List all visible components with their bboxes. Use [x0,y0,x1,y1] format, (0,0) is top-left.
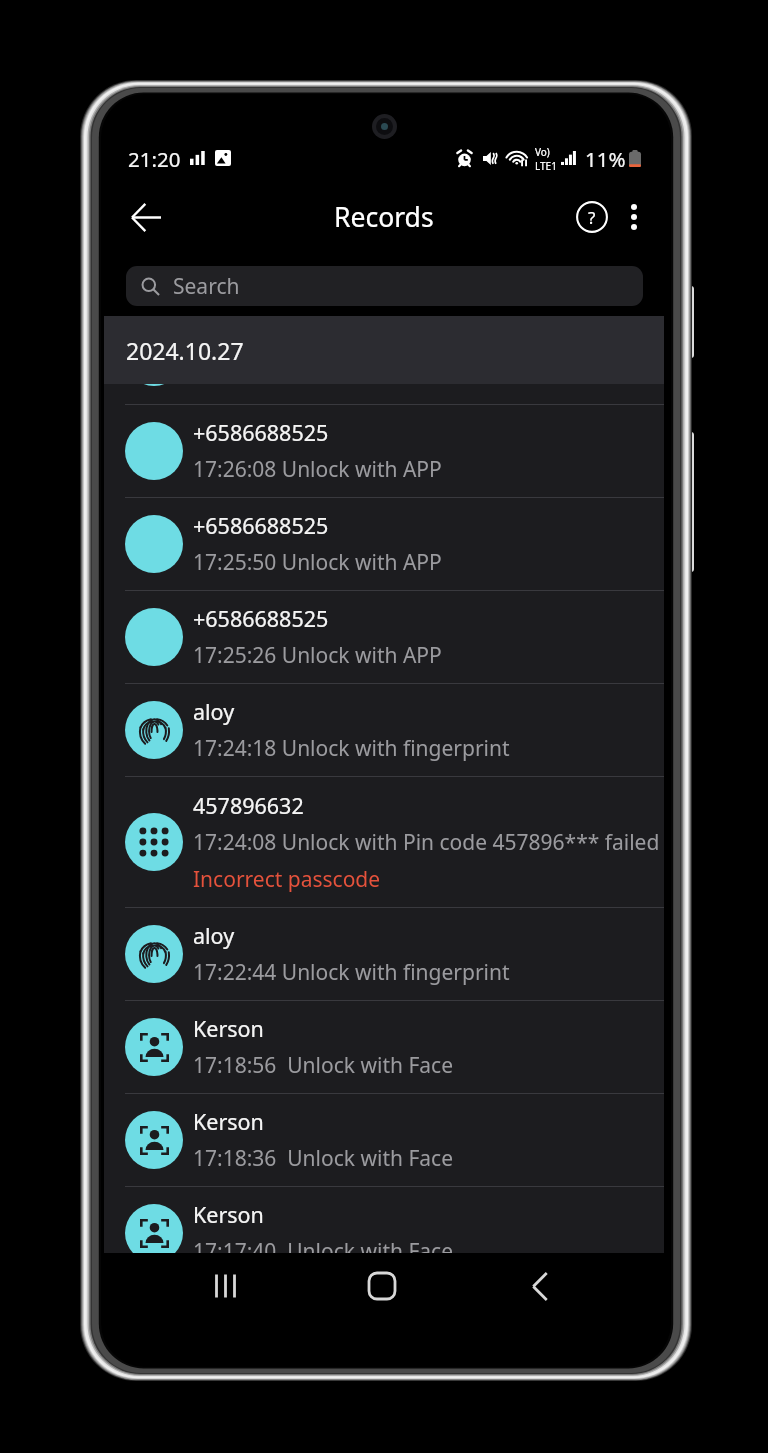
button[interactable]: 2024.10.27 [104,316,664,384]
button[interactable]: Home [353,1257,411,1315]
staticText: 2024.10.27 [126,335,244,366]
staticText: 21:20 [128,145,181,171]
staticText: 457896632 [193,791,304,820]
button[interactable]: Kerson [104,1000,664,1093]
button[interactable]: +6586688525 [104,497,664,590]
staticText: 17:18:56 Unlock with Face [193,1051,453,1080]
staticText: Records [334,199,434,235]
button[interactable]: Kerson [104,1093,664,1186]
staticText: 17:17:40 Unlock with Face [193,1237,453,1253]
staticText: Vo) [535,145,550,159]
staticText: 17:26:08 Unlock with APP [193,455,442,484]
staticText: 17:25:50 Unlock with APP [193,548,442,577]
staticText: 11% [585,145,626,171]
staticText: aloy [193,697,235,726]
staticText: Search [173,272,240,301]
staticText: LTE1 [535,159,557,171]
staticText: Kerson [193,1200,264,1229]
staticText: 17:25:26 Unlock with APP [193,641,442,670]
staticText: 17:18:36 Unlock with Face [193,1144,453,1173]
button[interactable]: More options [612,195,656,239]
button[interactable]: Help [566,191,618,243]
button[interactable]: Recent apps [196,1257,254,1315]
button[interactable]: aloy [104,907,664,1000]
button[interactable]: +6586688525 [104,590,664,683]
staticText: aloy [193,921,235,950]
staticText: ? [588,206,596,229]
button[interactable]: Search [126,266,643,306]
staticText: 17:22:44 Unlock with fingerprint [193,958,510,987]
staticText: +6586688525 [193,511,329,540]
button[interactable]: Back [118,189,174,245]
button[interactable]: Back [511,1257,569,1315]
staticText: +6586688525 [193,604,329,633]
staticText: Kerson [193,1107,264,1136]
staticText: Kerson [193,1014,264,1043]
button[interactable]: 457896632 [104,776,664,907]
staticText: +6586688525 [193,418,329,447]
staticText: 17:24:18 Unlock with fingerprint [193,734,510,763]
button[interactable]: Kerson [104,1186,664,1253]
button[interactable]: aloy [104,683,664,776]
staticText: 17:24:08 Unlock with Pin code 457896*** … [193,828,660,857]
staticText: Incorrect passcode [193,865,381,894]
button[interactable]: +6586688525 [104,404,664,497]
